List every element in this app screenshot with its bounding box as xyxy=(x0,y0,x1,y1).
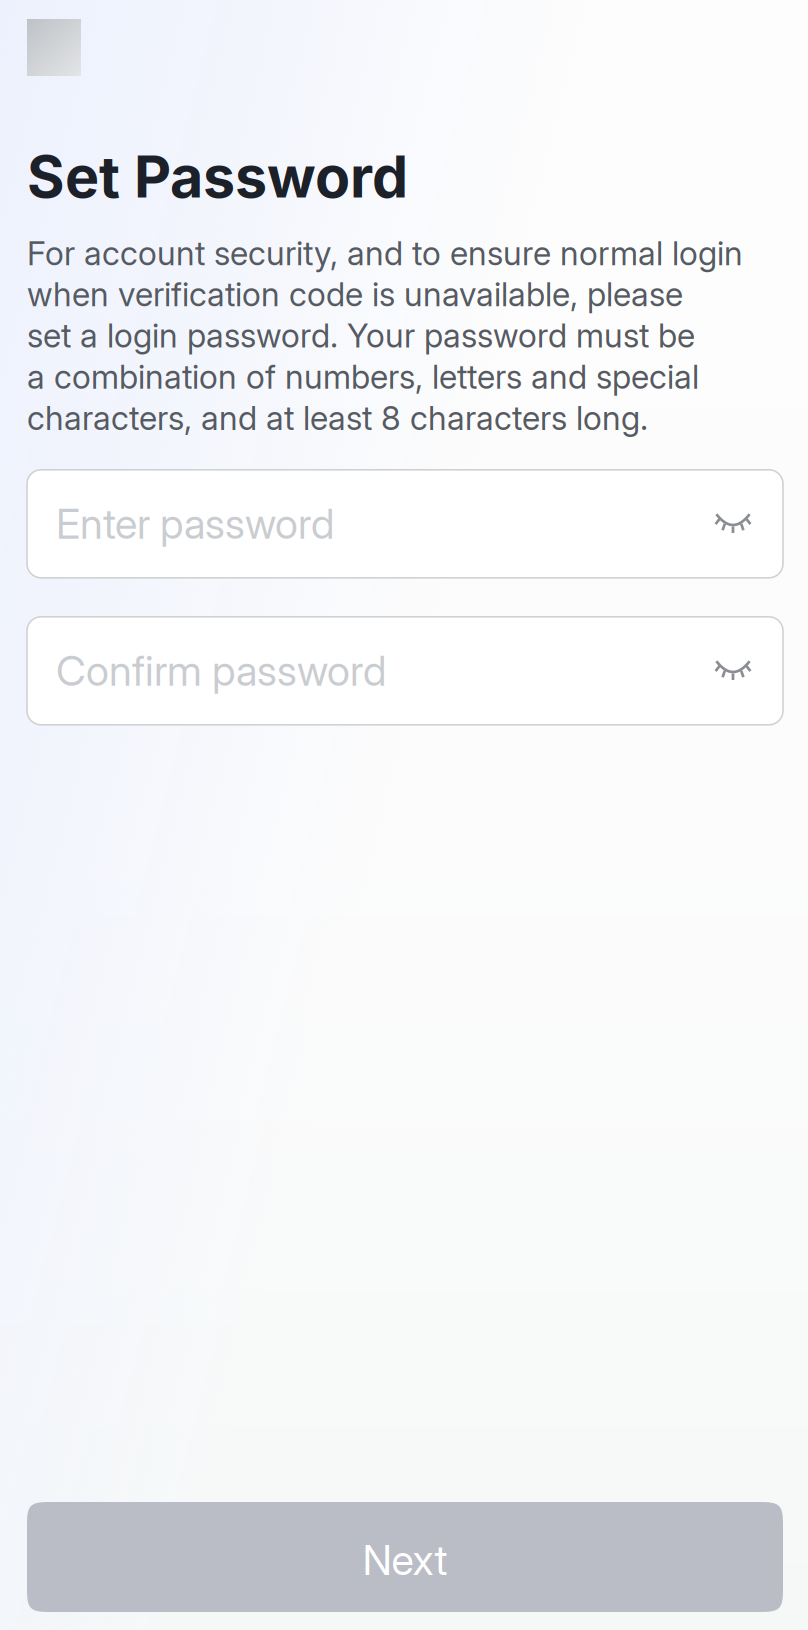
staticText: Set Password xyxy=(27,142,408,211)
staticText: Confirm password xyxy=(56,646,386,696)
button[interactable]: Enter password xyxy=(27,470,783,578)
button[interactable]: Confirm password xyxy=(27,617,783,725)
button[interactable]: Next xyxy=(27,1502,783,1612)
staticText: Enter password xyxy=(56,499,334,549)
staticText: For account security, and to ensure norm… xyxy=(27,233,743,438)
staticText: Next xyxy=(362,1535,447,1585)
